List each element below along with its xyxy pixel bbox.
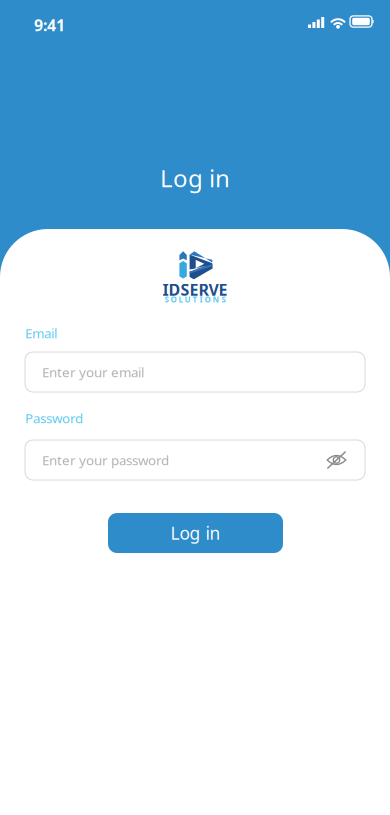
staticText: Enter your password <box>42 451 169 469</box>
button[interactable]: Log in <box>108 513 283 553</box>
staticText: Log in <box>160 162 230 194</box>
staticText: Log in <box>170 521 220 544</box>
staticText: S O L U T I O N S <box>164 294 225 305</box>
staticText: Email <box>25 324 57 342</box>
staticText: 9:41 <box>34 14 65 36</box>
staticText: Password <box>25 409 83 427</box>
button[interactable]: Show password <box>320 444 354 476</box>
staticText: IDSERVE <box>162 279 227 300</box>
staticText: Enter your email <box>42 363 144 381</box>
